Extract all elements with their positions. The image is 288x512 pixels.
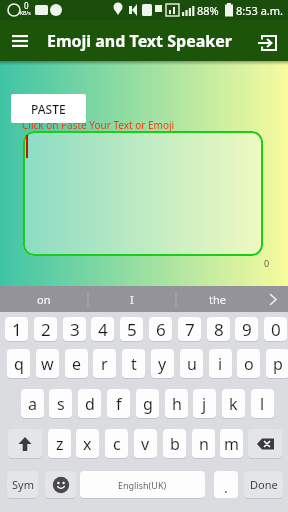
button[interactable]: 9 — [235, 317, 258, 341]
button[interactable]: b — [163, 429, 186, 458]
button[interactable]: c — [105, 429, 128, 458]
staticText: 6 — [156, 318, 166, 341]
staticText: z — [56, 433, 64, 455]
staticText: Click on Paste Your Text or Emoji — [22, 118, 175, 132]
staticText: on — [37, 292, 51, 307]
staticText: 0 — [271, 318, 281, 341]
staticText: Sym — [12, 477, 34, 492]
button[interactable]: 2 — [34, 317, 57, 341]
staticText: m — [224, 433, 239, 455]
button[interactable]: Sym — [7, 471, 38, 498]
staticText: k — [229, 393, 238, 415]
staticText: 9 — [242, 318, 252, 341]
button[interactable]: r — [93, 349, 116, 378]
button[interactable]: Done — [244, 471, 283, 498]
button[interactable]: i — [209, 349, 232, 378]
staticText: . — [224, 478, 228, 497]
button[interactable]: h — [165, 389, 188, 418]
staticText: English(UK) — [118, 479, 167, 491]
staticText: Emoji and Text Speaker — [47, 30, 232, 52]
staticText: c — [113, 433, 121, 455]
staticText: o — [244, 353, 254, 375]
button[interactable] — [4, 25, 35, 56]
staticText: 0 — [264, 257, 270, 269]
button[interactable]: k — [222, 389, 245, 418]
staticText: u — [187, 353, 197, 375]
button[interactable]: n — [192, 429, 215, 458]
button[interactable] — [248, 429, 282, 458]
button[interactable]: 3 — [63, 317, 86, 341]
staticText: I — [130, 292, 134, 307]
staticText: a — [28, 393, 37, 415]
staticText: v — [141, 433, 150, 455]
staticText: 1 — [12, 318, 22, 341]
staticText: 8 — [214, 318, 224, 341]
button[interactable]: s — [49, 389, 72, 418]
button[interactable]: . — [214, 471, 238, 498]
button[interactable]: z — [48, 429, 71, 458]
button[interactable]: 0 — [264, 317, 287, 341]
staticText: KB/s — [20, 10, 31, 17]
staticText: p — [273, 353, 283, 375]
staticText: 5 — [127, 318, 137, 341]
staticText: the — [209, 292, 226, 307]
staticText: d — [85, 393, 95, 415]
staticText: x — [83, 433, 92, 455]
button[interactable]: y — [151, 349, 174, 378]
staticText: 7 — [185, 318, 195, 341]
staticText: n — [199, 433, 209, 455]
staticText: i — [218, 353, 223, 375]
button[interactable]: w — [36, 349, 59, 378]
button[interactable] — [253, 32, 283, 62]
button[interactable]: 8 — [207, 317, 230, 341]
button[interactable]: on — [0, 286, 88, 312]
button[interactable]: PASTE — [11, 94, 86, 123]
button[interactable] — [8, 429, 42, 458]
button[interactable]: the — [176, 286, 258, 312]
staticText: PASTE — [31, 101, 66, 117]
button[interactable]: j — [193, 389, 216, 418]
button[interactable]: 6 — [149, 317, 172, 341]
staticText: r — [101, 353, 108, 375]
staticText: s — [57, 393, 65, 415]
staticText: 0 — [24, 0, 29, 11]
button[interactable]: l — [251, 389, 274, 418]
staticText: Done — [250, 477, 278, 492]
button[interactable]: u — [180, 349, 203, 378]
staticText: 4 — [98, 318, 108, 341]
button[interactable]: q — [7, 349, 30, 378]
staticText: j — [202, 393, 207, 415]
button[interactable]: p — [266, 349, 288, 378]
button[interactable]: 1 — [5, 317, 28, 341]
button[interactable]: m — [220, 429, 243, 458]
button[interactable]: 4 — [91, 317, 114, 341]
staticText: 3 — [70, 318, 80, 341]
staticText: y — [158, 353, 167, 375]
staticText: f — [116, 393, 122, 415]
staticText: w — [41, 353, 54, 375]
button[interactable]: g — [136, 389, 159, 418]
staticText: g — [143, 393, 153, 415]
staticText: b — [170, 433, 180, 455]
staticText: 8:53 a.m. — [236, 3, 284, 18]
staticText: 2 — [41, 318, 51, 341]
staticText: q — [14, 353, 24, 375]
staticText: e — [72, 353, 82, 375]
staticText: l — [260, 393, 265, 415]
staticText: t — [131, 353, 137, 375]
button[interactable]: 7 — [178, 317, 201, 341]
button[interactable]: t — [122, 349, 145, 378]
button[interactable]: e — [65, 349, 88, 378]
button[interactable]: 5 — [120, 317, 143, 341]
button[interactable]: d — [78, 389, 101, 418]
button[interactable]: x — [76, 429, 99, 458]
staticText: h — [172, 393, 182, 415]
button[interactable]: v — [134, 429, 157, 458]
button[interactable] — [45, 471, 76, 498]
staticText: 88% — [197, 3, 219, 18]
button[interactable]: a — [21, 389, 44, 418]
button[interactable]: I — [88, 286, 176, 312]
button[interactable]: English(UK) — [80, 471, 205, 498]
button[interactable]: o — [237, 349, 260, 378]
button[interactable]: f — [107, 389, 130, 418]
